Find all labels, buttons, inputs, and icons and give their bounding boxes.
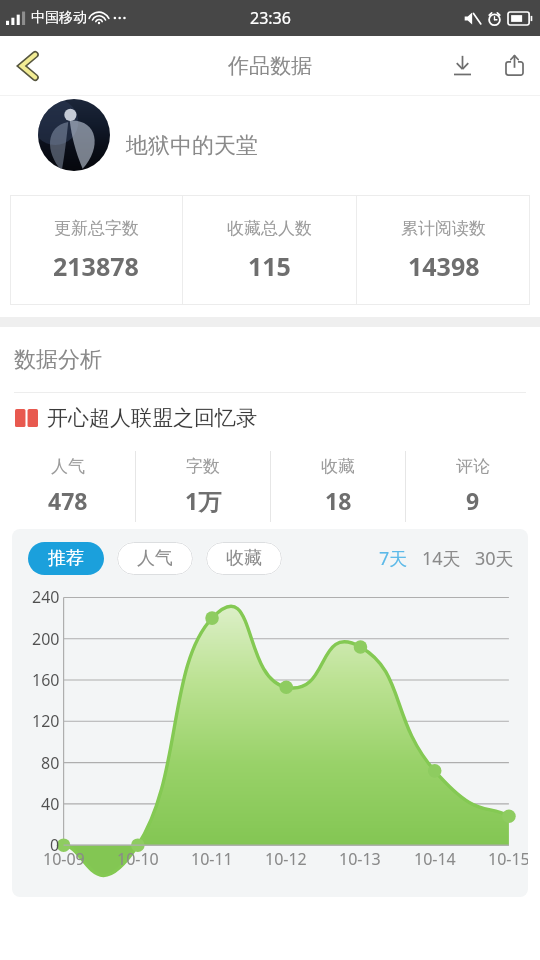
button[interactable]: 评论 bbox=[406, 443, 540, 529]
staticText: 10-11 bbox=[191, 848, 233, 870]
button[interactable]: 人气 bbox=[0, 443, 135, 529]
button[interactable]: 字数 bbox=[136, 443, 270, 529]
button[interactable]: 收藏 bbox=[271, 443, 405, 529]
staticText: 14398 bbox=[408, 249, 480, 283]
staticText: 213878 bbox=[53, 249, 139, 283]
staticText: 160 bbox=[32, 669, 60, 691]
staticText: 地狱中的天堂 bbox=[126, 132, 258, 160]
staticText: 10-10 bbox=[117, 848, 159, 870]
button[interactable]: 人气 bbox=[117, 542, 193, 575]
staticText: 0 bbox=[50, 834, 60, 856]
staticText: 10-14 bbox=[414, 848, 456, 870]
staticText: 23:36 bbox=[250, 7, 291, 29]
button[interactable]: 地狱中的天堂 bbox=[0, 96, 540, 195]
staticText: 115 bbox=[248, 249, 291, 283]
staticText: 7天 bbox=[379, 546, 408, 571]
staticText: 10-12 bbox=[265, 848, 307, 870]
button[interactable]: 推荐 bbox=[28, 542, 104, 575]
button[interactable]: 14天 bbox=[420, 542, 463, 575]
staticText: 478 bbox=[48, 485, 88, 516]
button[interactable]: Share bbox=[488, 36, 540, 95]
staticText: 中国移动 bbox=[31, 9, 87, 27]
button[interactable]: Back bbox=[0, 36, 56, 95]
staticText: 10-15 bbox=[488, 848, 528, 870]
button[interactable]: 开心超人联盟之回忆录 bbox=[0, 393, 540, 443]
button[interactable]: Download bbox=[436, 36, 488, 95]
staticText: 10-13 bbox=[339, 848, 381, 870]
staticText: 200 bbox=[32, 628, 60, 650]
button[interactable]: 7天 bbox=[377, 542, 410, 575]
staticText: 40 bbox=[41, 793, 60, 815]
staticText: 10-09 bbox=[43, 848, 85, 870]
staticText: 120 bbox=[32, 710, 60, 732]
staticText: 9 bbox=[466, 485, 480, 516]
staticText: 收藏 bbox=[226, 547, 262, 570]
staticText: 字数 bbox=[186, 456, 220, 477]
button[interactable]: 30天 bbox=[473, 542, 516, 575]
button[interactable]: 收藏总人数 bbox=[183, 195, 356, 305]
button[interactable]: 更新总字数 bbox=[10, 195, 182, 305]
staticText: 18 bbox=[325, 485, 352, 516]
staticText: 累计阅读数 bbox=[401, 218, 486, 239]
button[interactable]: 累计阅读数 bbox=[357, 195, 530, 305]
staticText: 80 bbox=[41, 752, 60, 774]
staticText: 收藏 bbox=[321, 456, 355, 477]
staticText: 作品数据 bbox=[228, 53, 312, 79]
staticText: 人气 bbox=[51, 456, 85, 477]
staticText: 14天 bbox=[422, 546, 461, 571]
staticText: 开心超人联盟之回忆录 bbox=[47, 405, 257, 431]
staticText: 240 bbox=[32, 586, 60, 608]
staticText: 更新总字数 bbox=[54, 218, 139, 239]
staticText: 30天 bbox=[475, 546, 514, 571]
staticText: 人气 bbox=[137, 547, 173, 570]
staticText: 1万 bbox=[185, 485, 222, 516]
staticText: 评论 bbox=[456, 456, 490, 477]
button[interactable]: 收藏 bbox=[206, 542, 282, 575]
staticText: 收藏总人数 bbox=[227, 218, 312, 239]
staticText: 数据分析 bbox=[14, 346, 102, 374]
staticText: 推荐 bbox=[48, 547, 84, 570]
